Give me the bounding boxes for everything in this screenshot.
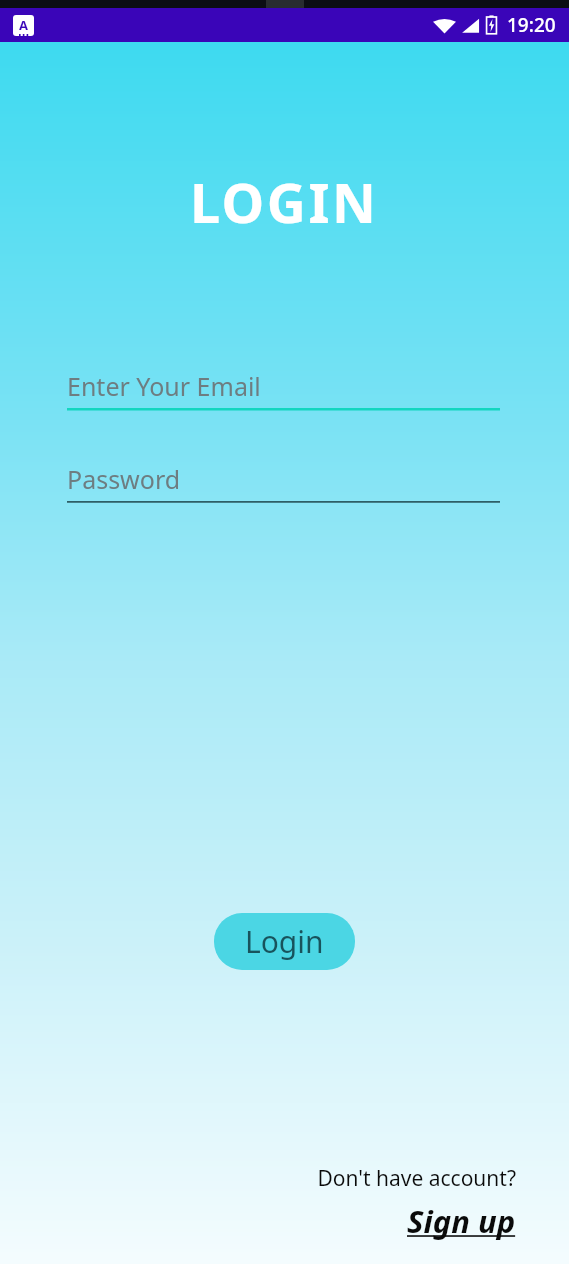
staticText: Password <box>67 462 181 496</box>
button[interactable]: Password <box>67 462 500 505</box>
button[interactable]: Enter Your Email <box>67 369 500 412</box>
button[interactable]: Sign up <box>407 1200 516 1242</box>
staticText: 19:20 <box>507 12 556 38</box>
staticText: Enter Your Email <box>67 369 261 403</box>
button[interactable]: Login <box>214 913 355 970</box>
staticText: A <box>19 16 28 34</box>
staticText: LOGIN <box>190 165 379 239</box>
staticText: Login <box>245 921 324 962</box>
staticText: Sign up <box>407 1200 516 1242</box>
staticText: Don't have account? <box>317 1164 516 1193</box>
